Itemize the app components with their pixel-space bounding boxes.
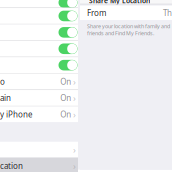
- button[interactable]: ain: [0, 90, 78, 106]
- staticText: ›: [73, 75, 76, 88]
- staticText: On: [60, 93, 71, 103]
- button[interactable]: Location Services toggle: [0, 8, 78, 24]
- button[interactable]: Location Services toggle: [0, 0, 78, 7]
- button[interactable]: Location Services toggle: [0, 57, 78, 73]
- button[interactable]: y iPhone: [0, 106, 78, 122]
- staticText: cation: [0, 161, 23, 171]
- button[interactable]: Location Services toggle: [0, 24, 78, 40]
- staticText: ain: [0, 93, 11, 103]
- button[interactable]: Open: [0, 142, 78, 158]
- staticText: ›: [73, 92, 76, 104]
- staticText: Share your location with family and frie…: [87, 23, 170, 37]
- button[interactable]: cation: [0, 158, 78, 172]
- staticText: On: [60, 109, 71, 120]
- staticText: On: [60, 76, 71, 87]
- button[interactable]: From: [80, 6, 172, 20]
- button[interactable]: o: [0, 74, 78, 89]
- staticText: Share My Location: [89, 0, 150, 5]
- staticText: y iPhone: [0, 109, 33, 120]
- staticText: Th: [163, 8, 172, 18]
- staticText: ›: [73, 143, 76, 156]
- staticText: ›: [73, 160, 76, 172]
- staticText: From: [87, 8, 106, 18]
- staticText: ›: [73, 108, 76, 121]
- staticText: o: [0, 76, 5, 87]
- button[interactable]: Location Services toggle: [0, 41, 78, 57]
